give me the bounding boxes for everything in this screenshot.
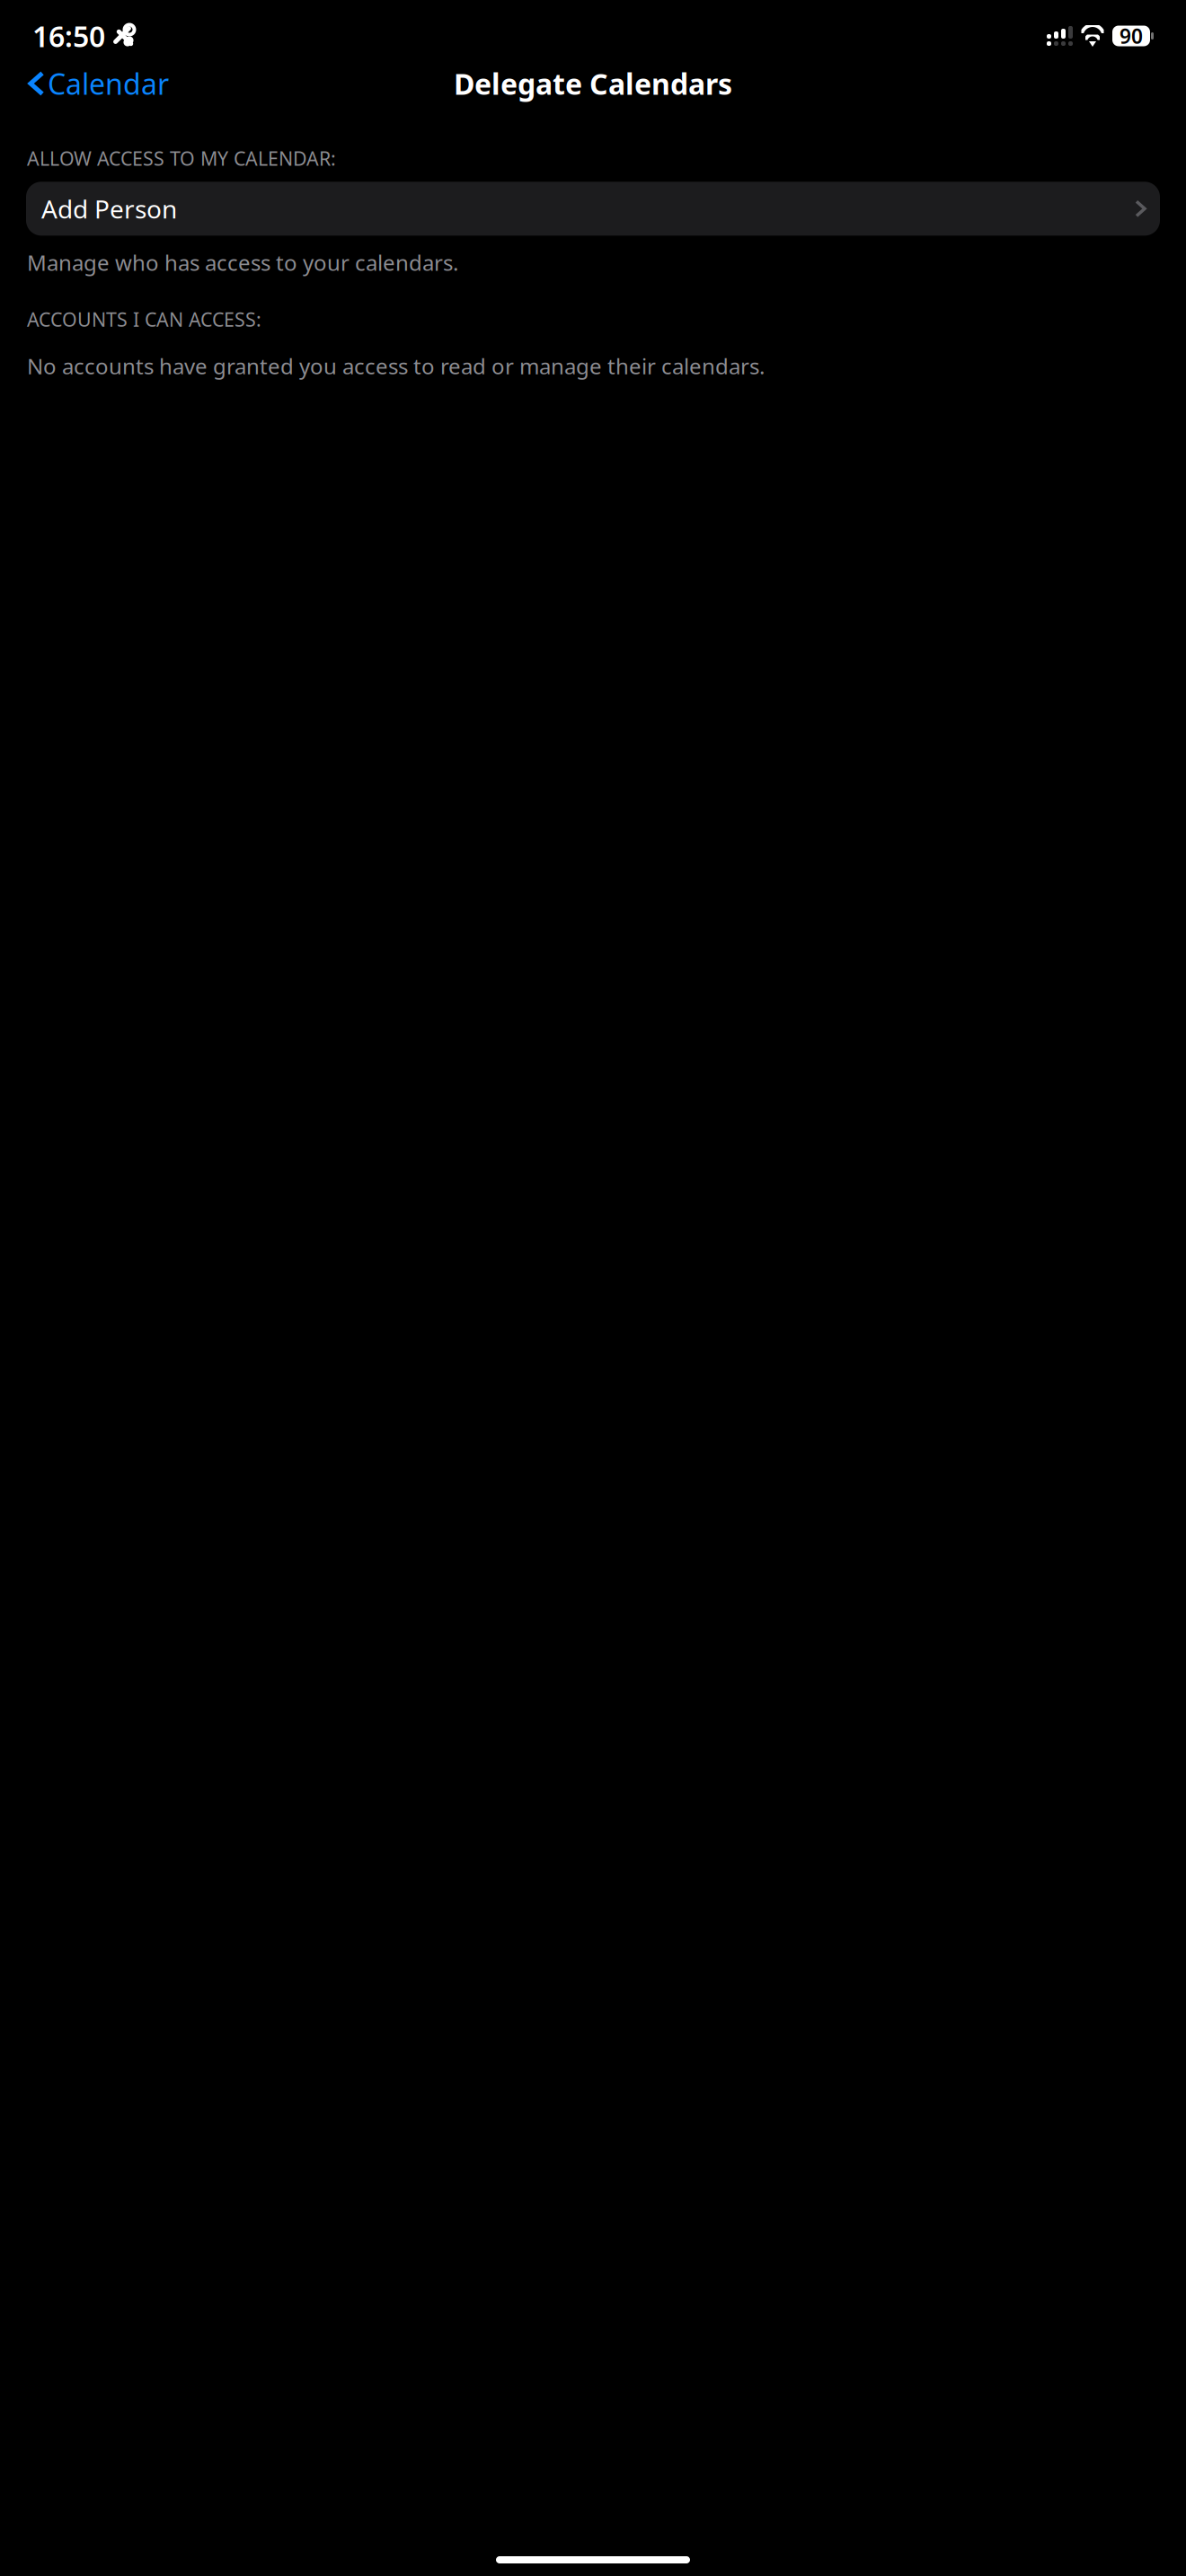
button[interactable]: Calendar: [27, 57, 173, 110]
staticText: Calendar: [48, 64, 169, 103]
staticText: ALLOW ACCESS TO MY CALENDAR:: [27, 146, 336, 171]
staticText: 90: [1120, 22, 1143, 49]
staticText: Delegate Calendars: [454, 64, 732, 103]
button[interactable]: Add Person: [26, 182, 1160, 236]
staticText: ACCOUNTS I CAN ACCESS:: [27, 306, 261, 332]
staticText: 16:50: [32, 17, 105, 55]
staticText: Add Person: [41, 192, 177, 225]
staticText: Manage who has access to your calendars.: [27, 248, 458, 277]
staticText: No accounts have granted you access to r…: [27, 352, 765, 380]
